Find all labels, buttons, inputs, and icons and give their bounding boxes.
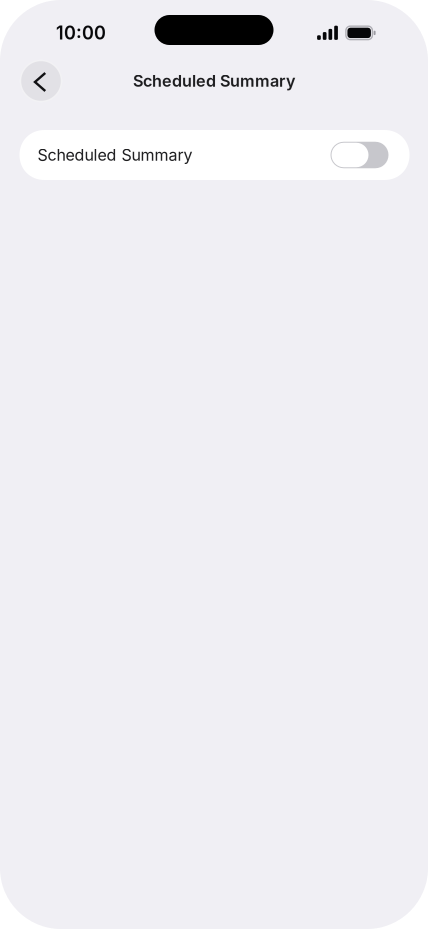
button[interactable]: Back [20, 60, 62, 102]
button[interactable]: Scheduled Summary [19, 130, 409, 180]
staticText: Scheduled Summary [133, 71, 295, 91]
staticText: 10:00 [56, 22, 106, 44]
staticText: Scheduled Summary [37, 145, 192, 165]
